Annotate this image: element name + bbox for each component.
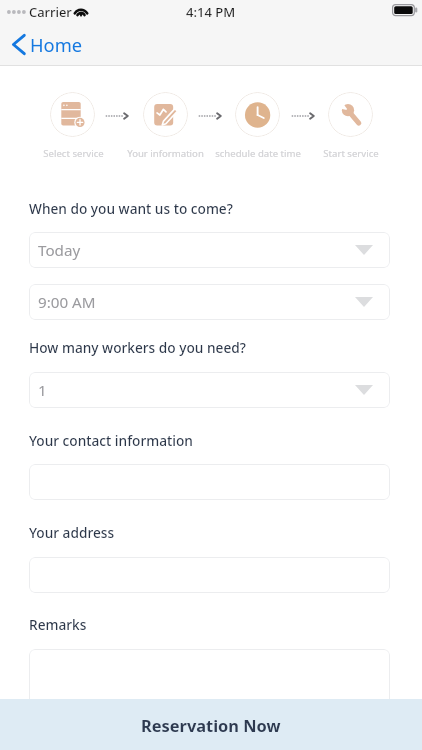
staticText: Your information	[127, 147, 204, 160]
staticText: Your address	[29, 523, 115, 542]
button[interactable]: Home	[10, 22, 145, 66]
button[interactable]	[29, 464, 390, 500]
staticText: Select service	[43, 147, 104, 160]
button[interactable]	[29, 649, 390, 719]
staticText: Carrier	[29, 3, 72, 21]
staticText: Start service	[323, 147, 379, 160]
staticText: Today	[38, 240, 81, 261]
button[interactable]	[29, 557, 390, 593]
button[interactable]: Your information	[143, 92, 188, 137]
staticText: When do you want us to come?	[29, 199, 233, 218]
button[interactable]: Select service	[50, 92, 95, 137]
button[interactable]: 9:00 AM	[29, 284, 390, 320]
staticText: Remarks	[29, 615, 87, 634]
staticText: Reservation Now	[141, 714, 281, 736]
staticText: Home	[30, 32, 83, 57]
staticText: How many workers do you need?	[29, 338, 246, 357]
button[interactable]: Reservation Now	[0, 699, 422, 750]
button[interactable]: schedule date time	[235, 92, 280, 137]
staticText: schedule date time	[215, 147, 301, 160]
staticText: 1	[38, 380, 47, 401]
staticText: 4:14 PM	[186, 3, 236, 21]
button[interactable]: Today	[29, 232, 390, 268]
button[interactable]: 1	[29, 372, 390, 408]
staticText: 9:00 AM	[38, 292, 96, 313]
button[interactable]: Start service	[328, 92, 373, 137]
staticText: Your contact information	[29, 431, 193, 450]
